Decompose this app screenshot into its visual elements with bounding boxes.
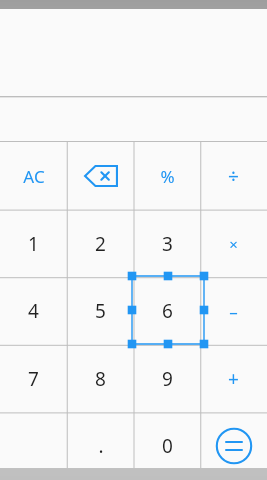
staticText: 5 [95, 298, 106, 324]
button[interactable]: 6 [134, 277, 201, 345]
button[interactable]: Delete [67, 142, 134, 210]
button[interactable]: . [67, 412, 134, 480]
button[interactable]: – [200, 277, 267, 345]
staticText: AC [23, 165, 45, 188]
staticText: × [229, 234, 238, 254]
staticText: – [229, 300, 238, 323]
staticText: 8 [95, 366, 106, 392]
button[interactable]: 3 [134, 210, 201, 278]
button[interactable]: AC [0, 142, 67, 210]
staticText: 3 [162, 231, 173, 257]
button[interactable]: 2 [67, 210, 134, 278]
staticText: ÷ [228, 163, 239, 189]
staticText: 7 [28, 366, 39, 392]
button[interactable]: Blank [0, 412, 67, 480]
button[interactable]: × [200, 210, 267, 278]
staticText: 2 [95, 231, 106, 257]
staticText: 0 [162, 433, 173, 459]
button[interactable]: 5 [67, 277, 134, 345]
button[interactable]: 8 [67, 345, 134, 413]
button[interactable]: % [134, 142, 201, 210]
staticText: % [160, 165, 175, 188]
button[interactable]: + [200, 345, 267, 413]
staticText: 4 [28, 298, 39, 324]
staticText: + [228, 366, 239, 392]
button[interactable]: 1 [0, 210, 67, 278]
button[interactable]: Equals [200, 412, 267, 480]
staticText: 1 [28, 231, 39, 257]
staticText: 9 [162, 366, 173, 392]
button[interactable]: 9 [134, 345, 201, 413]
staticText: . [98, 433, 104, 459]
button[interactable]: 7 [0, 345, 67, 413]
staticText: 6 [162, 298, 173, 324]
button[interactable]: 4 [0, 277, 67, 345]
button[interactable]: 0 [134, 412, 201, 480]
button[interactable]: ÷ [200, 142, 267, 210]
